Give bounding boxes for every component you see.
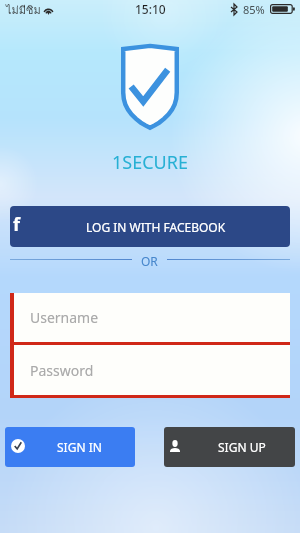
staticText: Password (30, 361, 94, 380)
button[interactable]: Password (14, 345, 290, 395)
staticText: 1SECURE (0, 150, 300, 175)
staticText: SIGN UP (218, 439, 266, 455)
staticText: 85% (243, 2, 265, 17)
staticText: LOG IN WITH FACEBOOK (86, 219, 226, 235)
button[interactable]: Sign in (5, 427, 135, 467)
button[interactable]: Username (14, 293, 290, 342)
staticText: 15:10 (135, 1, 166, 17)
other: Sign up (170, 440, 180, 452)
staticText: SIGN IN (57, 439, 102, 455)
button[interactable]: f (10, 206, 290, 247)
staticText: f (13, 212, 20, 237)
other: Sign in (11, 439, 25, 453)
staticText: OR (141, 253, 158, 269)
staticText: ไม่มีซิม (6, 1, 41, 18)
staticText: Username (30, 308, 99, 327)
button[interactable]: Sign up (164, 427, 295, 467)
